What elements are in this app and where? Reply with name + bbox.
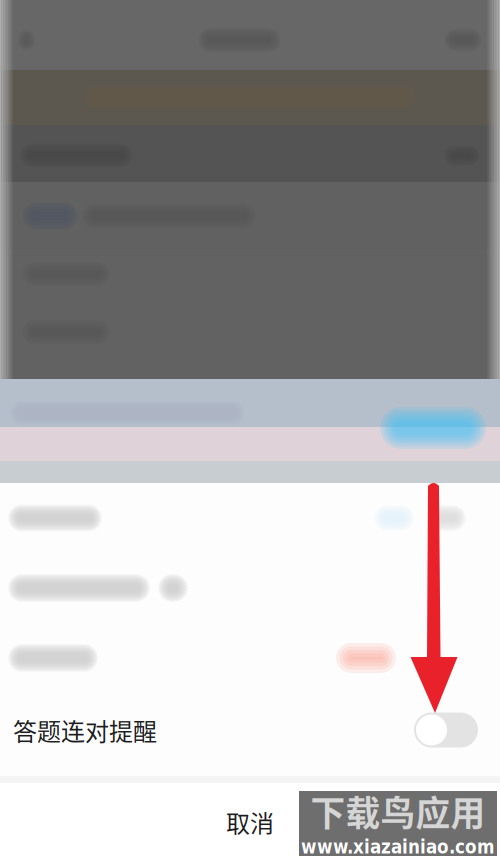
button[interactable]: 答题连对提醒 [0,693,500,767]
staticText: 取消 [226,805,274,839]
staticText: www.xiazainiao.com [301,836,495,858]
staticText: 答题连对提醒 [13,713,157,747]
button[interactable]: 立即领取 [380,407,486,449]
button[interactable]: 取消 [0,783,500,861]
staticText: 下载鸟应用 [310,786,485,836]
